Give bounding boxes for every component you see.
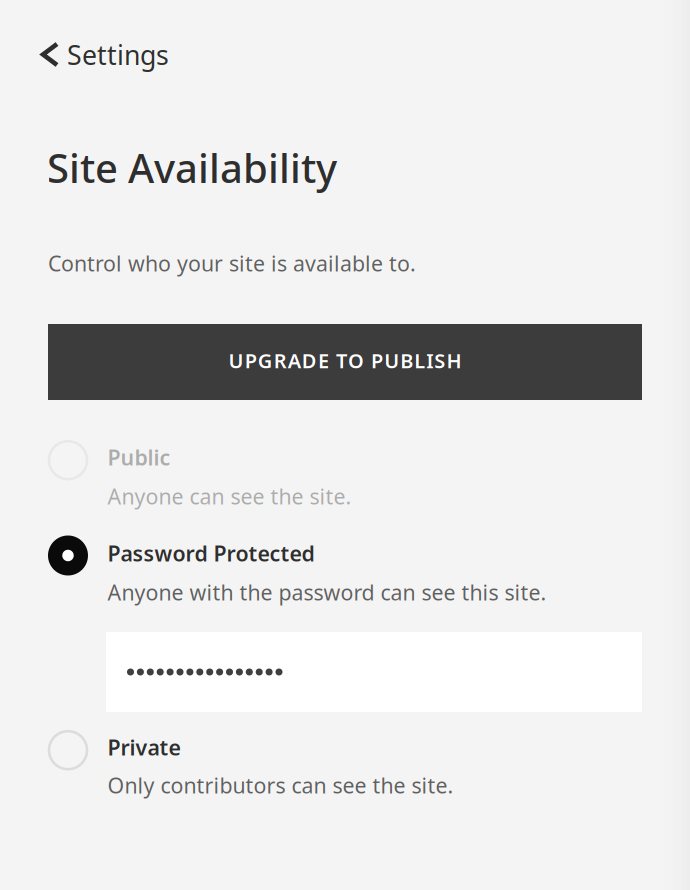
staticText: Settings — [67, 37, 169, 72]
staticText: Anyone can see the site. — [107, 482, 351, 510]
button[interactable]: UPGRADE TO PUBLISH — [48, 324, 642, 400]
staticText: Site Availability — [47, 141, 337, 194]
staticText: Control who your site is available to. — [48, 249, 416, 277]
staticText: Only contributors can see the site. — [107, 771, 453, 799]
button[interactable]: Private — [48, 733, 642, 811]
button[interactable]: Settings — [39, 37, 187, 83]
staticText: UPGRADE TO PUBLISH — [229, 347, 461, 374]
button[interactable]: Public — [48, 443, 642, 521]
button[interactable]: Site password — [106, 632, 642, 712]
staticText: Private — [107, 733, 180, 761]
staticText: Anyone with the password can see this si… — [107, 578, 546, 606]
button[interactable]: Password Protected — [48, 539, 642, 617]
staticText: Password Protected — [107, 539, 314, 567]
staticText: Public — [107, 443, 170, 471]
